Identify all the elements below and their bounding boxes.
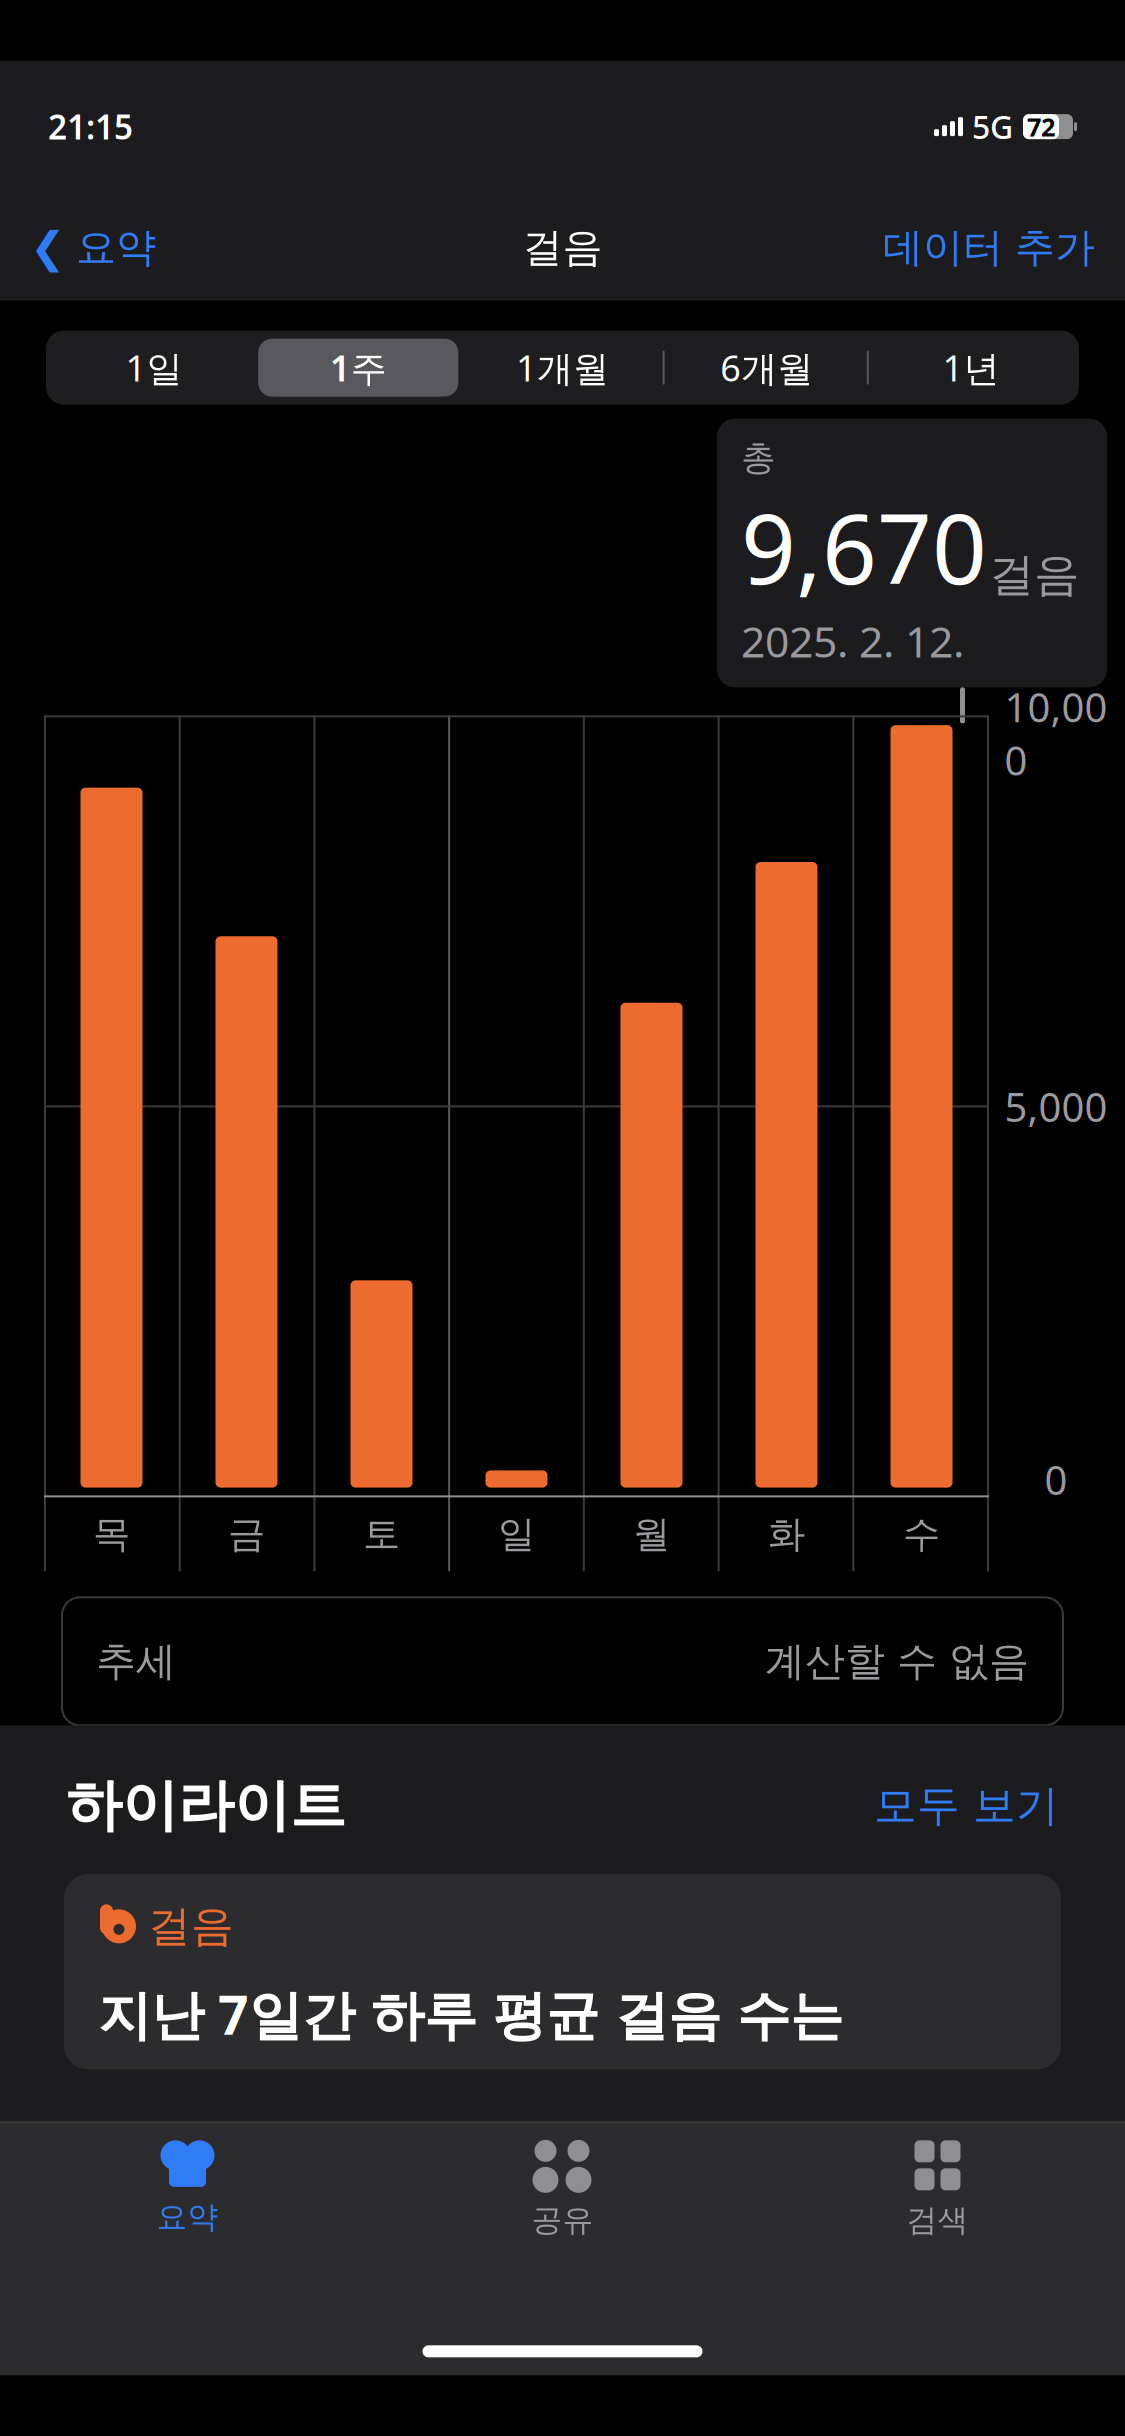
staticText: 2025. 2. 12.	[741, 613, 964, 669]
staticText: 지난 7일간 하루 평균 걸음 수는	[98, 1979, 843, 2049]
staticText: 1일	[126, 344, 183, 391]
staticText: 계산할 수 없음	[765, 1637, 1029, 1686]
staticText: 요약	[156, 2198, 218, 2236]
button[interactable]: ❮	[20, 211, 166, 284]
staticText: 금	[228, 1511, 265, 1557]
staticText: 걸음	[522, 223, 602, 272]
staticText: 화	[768, 1511, 805, 1557]
staticText: ❮	[30, 223, 66, 272]
staticText: 추세	[96, 1637, 176, 1686]
staticText: 토	[363, 1511, 400, 1557]
button[interactable]: 추세	[0, 1597, 1125, 1725]
staticText: 1주	[330, 344, 387, 391]
staticText: 요약	[76, 223, 156, 272]
button[interactable]: 1주	[256, 335, 460, 401]
staticText: 총	[741, 437, 776, 479]
button[interactable]: 1개월	[460, 335, 665, 401]
staticText: 5G	[972, 105, 1013, 148]
staticText: 일	[498, 1511, 535, 1557]
staticText: 0	[1044, 1453, 1067, 1506]
staticText: 데이터 추가	[883, 223, 1095, 272]
staticText: 걸음	[989, 547, 1079, 603]
button[interactable]: 1년	[869, 335, 1073, 401]
staticText: 걸음	[148, 1900, 234, 1952]
staticText: 검색	[906, 2201, 968, 2239]
button[interactable]: 요약	[0, 2126, 375, 2236]
button[interactable]: 6개월	[665, 335, 869, 401]
staticText: 공유	[531, 2201, 593, 2239]
staticText: 5,000	[1004, 1080, 1107, 1133]
staticText: 목	[93, 1511, 130, 1557]
staticText: 월	[633, 1511, 670, 1557]
staticText: 10,000	[1004, 680, 1107, 786]
button[interactable]: 모두 보기	[858, 1772, 1059, 1840]
staticText: 21:15	[48, 104, 133, 149]
staticText: 하이라이트	[66, 1771, 346, 1840]
button[interactable]: 걸음	[0, 1840, 1125, 2069]
button[interactable]: 1일	[52, 335, 256, 401]
staticText: 수	[903, 1511, 940, 1557]
staticText: 1년	[942, 344, 999, 391]
button[interactable]: 검색	[750, 2123, 1125, 2239]
staticText: 72	[1027, 110, 1055, 143]
staticText: 9,670	[741, 483, 987, 611]
button[interactable]: 데이터 추가	[873, 211, 1105, 284]
staticText: 6개월	[720, 344, 813, 391]
staticText: 모두 보기	[874, 1780, 1059, 1832]
button[interactable]: 공유	[375, 2123, 750, 2239]
staticText: 1개월	[516, 344, 609, 391]
